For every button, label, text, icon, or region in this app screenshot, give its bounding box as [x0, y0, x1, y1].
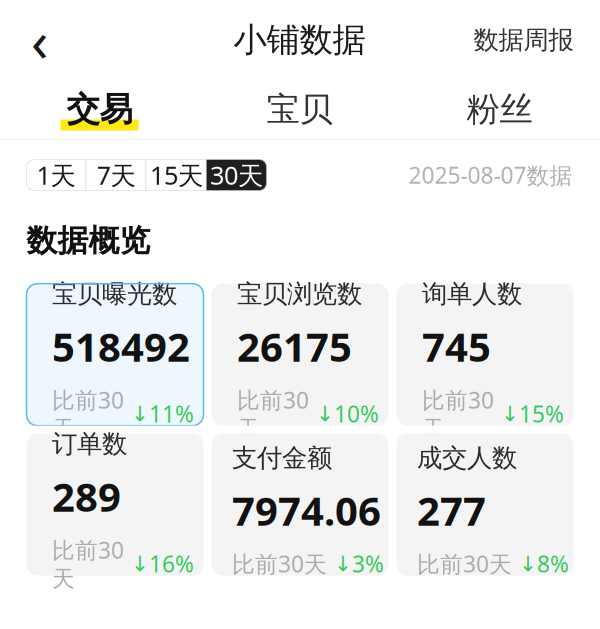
staticText: 数据周报	[473, 24, 573, 55]
staticText: 支付金额	[232, 442, 332, 474]
staticText: 宝贝浏览数	[237, 279, 362, 310]
button[interactable]: 交易	[0, 81, 199, 137]
staticText: 比前30天	[417, 549, 512, 579]
staticText: 成交人数	[417, 442, 517, 474]
staticText: 比前30天	[52, 385, 124, 443]
button[interactable]: 宝贝曝光数	[26, 284, 203, 426]
staticText: 小铺数据	[233, 19, 365, 60]
staticText: 30天	[210, 158, 263, 192]
staticText: ↓	[512, 552, 537, 576]
button[interactable]: 30天	[206, 159, 266, 190]
staticText: 宝贝	[266, 89, 332, 130]
staticText: 数据概览	[26, 222, 150, 260]
button[interactable]: 宝贝浏览数	[211, 284, 388, 426]
staticText: 277	[417, 484, 486, 537]
staticText: 比前30天	[237, 385, 309, 443]
button[interactable]: 7天	[86, 159, 146, 190]
button[interactable]: 询单人数	[396, 284, 573, 426]
staticText: 1天	[36, 158, 75, 192]
staticText: 2025-08-07数据	[408, 160, 572, 190]
staticText: ↓	[124, 552, 149, 576]
staticText: 10%	[334, 399, 379, 429]
staticText: 比前30天	[422, 385, 494, 443]
staticText: 7974.06	[232, 484, 381, 537]
button[interactable]: 成交人数	[396, 434, 573, 576]
staticText: ↓	[494, 402, 519, 426]
staticText: 8%	[537, 549, 569, 579]
staticText: 11%	[149, 399, 194, 429]
staticText: 16%	[149, 549, 194, 579]
staticText: 比前30天	[232, 549, 327, 579]
staticText: ↓	[309, 402, 334, 426]
button[interactable]: 数据周报	[459, 14, 587, 65]
button[interactable]: 15天	[146, 159, 206, 190]
button[interactable]: 订单数	[26, 434, 203, 576]
staticText: 交易	[66, 89, 132, 130]
staticText: 518492	[52, 320, 190, 373]
staticText: 15天	[150, 158, 203, 192]
staticText: 宝贝曝光数	[52, 279, 177, 310]
button[interactable]: 返回	[11, 12, 67, 68]
staticText: ↓	[327, 552, 352, 576]
staticText: 26175	[237, 320, 352, 373]
button[interactable]: 粉丝	[399, 81, 599, 137]
staticText: 订单数	[52, 429, 127, 460]
staticText: 745	[422, 320, 491, 373]
staticText: 7天	[96, 158, 135, 192]
staticText: ‹	[31, 3, 48, 77]
staticText: 15%	[519, 399, 564, 429]
staticText: ↓	[124, 402, 149, 426]
button[interactable]: 支付金额	[211, 434, 388, 576]
staticText: 3%	[352, 549, 384, 579]
button[interactable]: 1天	[26, 159, 86, 190]
staticText: 粉丝	[466, 89, 532, 130]
button[interactable]: 宝贝	[199, 81, 399, 137]
staticText: 询单人数	[422, 279, 522, 310]
staticText: 289	[52, 470, 121, 523]
staticText: 比前30天	[52, 535, 124, 593]
